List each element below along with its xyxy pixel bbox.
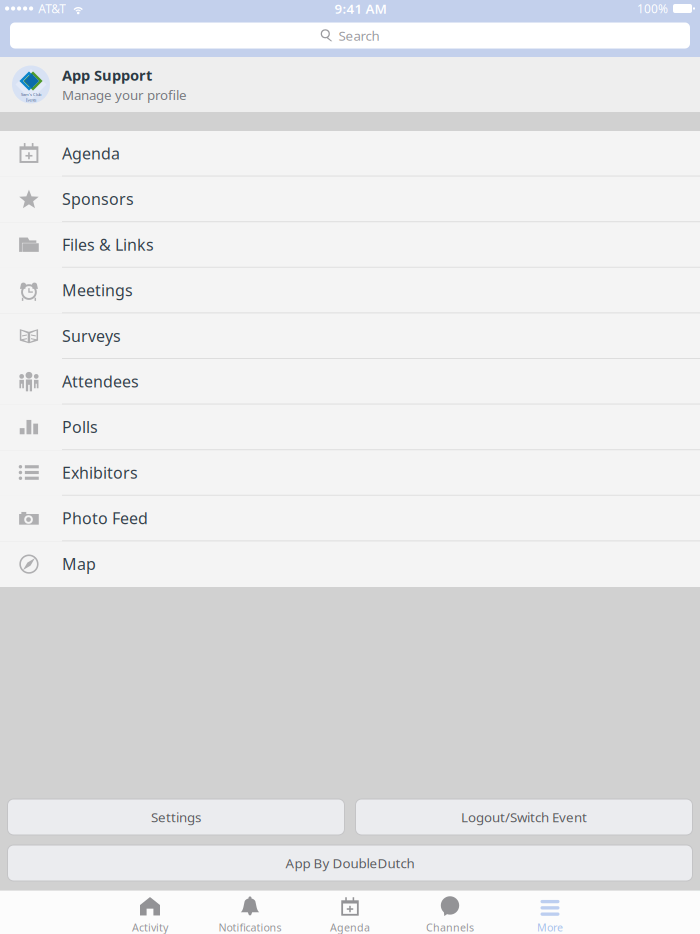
button[interactable]: Agenda — [0, 131, 700, 177]
staticText: Settings — [151, 808, 201, 826]
staticText: Meetings — [62, 279, 133, 301]
button[interactable]: Photo Feed — [0, 496, 700, 541]
staticText: Files & Links — [62, 234, 154, 255]
button[interactable]: Sponsors — [0, 177, 700, 222]
button[interactable]: Meetings — [0, 268, 700, 313]
staticText: Agenda — [330, 920, 370, 934]
button[interactable]: Logout/Switch Event — [355, 799, 692, 835]
staticText: Manage your profile — [62, 86, 187, 104]
staticText: Sam's Club — [21, 92, 41, 97]
staticText: Exhibitors — [62, 462, 138, 483]
button[interactable]: More — [500, 890, 600, 934]
staticText: Notifications — [218, 920, 281, 934]
button[interactable]: Sam's Club — [0, 57, 700, 112]
button[interactable]: App By DoubleDutch — [7, 845, 692, 881]
button[interactable]: Channels — [400, 890, 500, 934]
button[interactable]: Attendees — [0, 359, 700, 405]
button[interactable]: Agenda — [300, 890, 400, 934]
button[interactable]: Search — [10, 22, 690, 48]
button[interactable]: Surveys — [0, 313, 700, 359]
staticText: Sponsors — [62, 188, 134, 209]
button[interactable]: Notifications — [200, 890, 300, 934]
button[interactable]: Exhibitors — [0, 450, 700, 496]
staticText: Logout/Switch Event — [461, 808, 587, 826]
staticText: Attendees — [62, 371, 139, 392]
staticText: App Support — [62, 65, 152, 85]
staticText: 9:41 AM — [335, 0, 387, 17]
staticText: Channels — [426, 920, 474, 934]
staticText: Surveys — [62, 325, 121, 346]
staticText: 100% — [637, 0, 668, 16]
staticText: AT&T — [38, 0, 66, 16]
staticText: Agenda — [62, 143, 120, 164]
staticText: App By DoubleDutch — [285, 854, 414, 872]
staticText: Map — [62, 553, 96, 574]
button[interactable]: Settings — [7, 799, 344, 835]
button[interactable]: Files & Links — [0, 222, 700, 268]
staticText: Photo Feed — [62, 507, 148, 529]
button[interactable]: Map — [0, 541, 700, 587]
staticText: Events — [25, 97, 36, 102]
button[interactable]: Activity — [100, 890, 200, 934]
staticText: More — [537, 920, 563, 934]
staticText: Polls — [62, 416, 98, 437]
staticText: Search — [338, 27, 379, 44]
button[interactable]: Polls — [0, 405, 700, 450]
staticText: Activity — [132, 920, 168, 934]
